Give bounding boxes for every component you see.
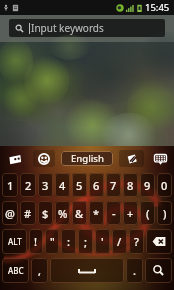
button[interactable]: 2: [20, 173, 36, 197]
button[interactable]: @: [2, 201, 18, 225]
staticText: $: [42, 206, 49, 221]
button[interactable]: +: [123, 201, 138, 225]
button[interactable]: 0: [157, 173, 172, 197]
button[interactable]: 4: [55, 173, 70, 197]
staticText: 2: [25, 178, 32, 193]
staticText: /: [117, 234, 122, 249]
button[interactable]: ALT: [2, 229, 27, 254]
button[interactable]: &: [72, 201, 87, 225]
staticText: ?: [134, 234, 139, 249]
staticText: &: [75, 206, 84, 221]
button[interactable]: ABC: [2, 258, 29, 283]
staticText: .: [133, 263, 136, 278]
staticText: ': [101, 234, 104, 249]
staticText: 15:45: [145, 1, 170, 14]
button[interactable]: Input keywords: [9, 19, 165, 37]
button[interactable]: English: [61, 151, 113, 166]
staticText: 6: [93, 178, 100, 193]
button[interactable]: 3: [38, 173, 53, 197]
staticText: ": [50, 234, 55, 249]
staticText: !: [34, 234, 38, 249]
button[interactable]: ,: [31, 258, 48, 283]
button[interactable]: 8: [123, 173, 138, 197]
button[interactable]: /: [112, 229, 127, 254]
button[interactable]: Emoji: [33, 150, 55, 167]
staticText: 3: [42, 178, 49, 193]
button[interactable]: 9: [140, 173, 155, 197]
staticText: 1: [7, 178, 14, 193]
button[interactable]: 7: [106, 173, 121, 197]
button[interactable]: .: [126, 258, 143, 283]
button[interactable]: $: [38, 201, 53, 225]
staticText: *: [93, 206, 100, 221]
button[interactable]: ): [157, 201, 172, 225]
staticText: :: [67, 234, 70, 249]
staticText: English: [71, 152, 104, 165]
button[interactable]: ?: [129, 229, 144, 254]
staticText: Input keywords: [31, 21, 104, 35]
button[interactable]: Handwriting: [119, 150, 144, 167]
button[interactable]: Hide keyboard: [151, 150, 170, 167]
staticText: 8: [127, 178, 134, 193]
button[interactable]: -: [106, 201, 121, 225]
staticText: ;: [84, 234, 88, 249]
staticText: ABC: [8, 265, 24, 276]
staticText: 4: [59, 178, 66, 193]
staticText: +: [127, 206, 134, 221]
button[interactable]: (: [140, 201, 155, 225]
button[interactable]: *: [89, 201, 104, 225]
button[interactable]: ": [45, 229, 59, 254]
staticText: ,: [38, 263, 42, 278]
button[interactable]: 6: [89, 173, 104, 197]
button[interactable]: Search: [145, 258, 172, 283]
button[interactable]: :: [61, 229, 76, 254]
staticText: 7: [110, 178, 117, 193]
staticText: %: [58, 206, 68, 221]
button[interactable]: 5: [72, 173, 87, 197]
staticText: @: [5, 206, 15, 221]
button[interactable]: %: [55, 201, 70, 225]
staticText: ): [163, 206, 167, 221]
staticText: -: [112, 206, 116, 221]
button[interactable]: ': [95, 229, 110, 254]
staticText: ALT: [8, 236, 22, 247]
staticText: #: [24, 206, 32, 221]
button[interactable]: 1: [2, 173, 18, 197]
button[interactable]: Backspace: [146, 229, 172, 254]
staticText: 0: [161, 178, 168, 193]
staticText: 5: [76, 178, 83, 193]
staticText: (: [146, 206, 150, 221]
staticText: 9: [144, 178, 151, 193]
button[interactable]: ;: [78, 229, 93, 254]
button[interactable]: !: [29, 229, 43, 254]
button[interactable]: Space: [50, 258, 124, 283]
button[interactable]: #: [20, 201, 36, 225]
button[interactable]: Theme: [5, 150, 24, 167]
